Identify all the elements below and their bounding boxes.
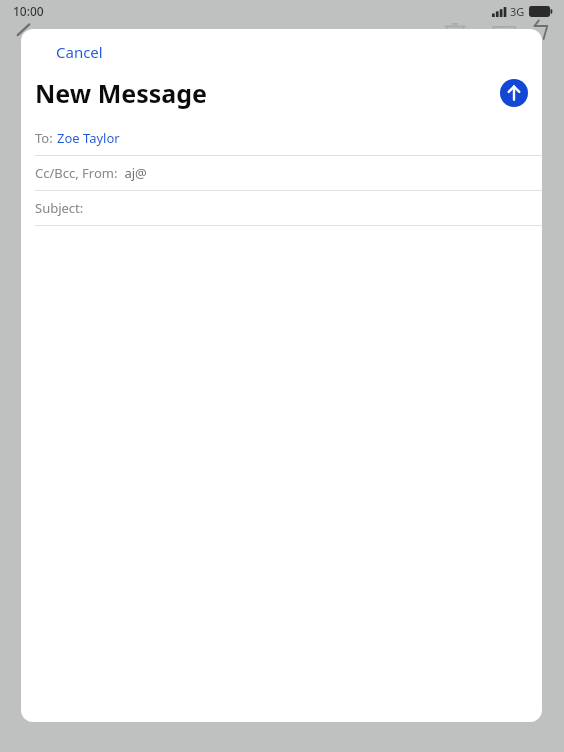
button[interactable]: To: [21, 121, 542, 155]
button[interactable]: Cancel [42, 37, 117, 67]
staticText: Cc/Bcc, From: [35, 164, 121, 182]
staticText: Zoe Taylor [57, 129, 120, 147]
staticText: Subject: [35, 199, 84, 217]
staticText: 10:00 [13, 3, 44, 19]
staticText: New Message [35, 76, 207, 110]
staticText: 3G [510, 4, 525, 19]
button[interactable]: Subject: [21, 191, 542, 225]
button[interactable]: Send [500, 79, 528, 107]
staticText: Cancel [56, 42, 103, 62]
staticText: aj@ [121, 164, 147, 182]
button[interactable]: Cc/Bcc, From: [21, 156, 542, 190]
staticText: To: [35, 129, 57, 147]
